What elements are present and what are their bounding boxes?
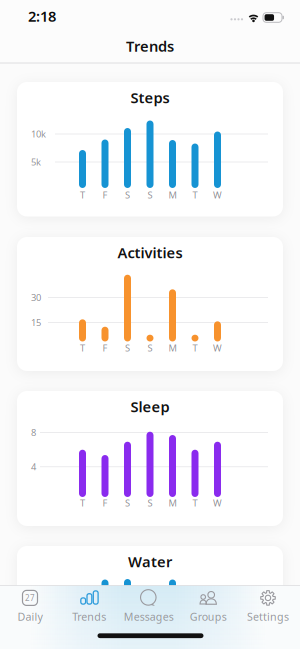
staticText: 2:18 [28,6,56,26]
staticText: M [168,189,176,201]
staticText: T [192,497,197,509]
staticText: Trends [72,609,106,624]
staticText: W [213,342,222,354]
staticText: W [213,189,222,201]
staticText: T [192,342,197,354]
button[interactable]: 27 [1,585,59,627]
staticText: 27 [25,593,35,603]
staticText: F [102,497,107,509]
staticText: S [147,342,152,354]
staticText: Messages [124,609,174,624]
staticText: 30 [31,291,41,304]
staticText: Settings [247,609,289,624]
staticText: 10k [31,128,46,140]
staticText: 15 [31,316,41,329]
staticText: F [102,342,107,354]
staticText: T [192,189,197,201]
staticText: S [125,342,130,354]
staticText: 8 [31,426,36,439]
staticText: M [168,497,176,509]
staticText: Groups [190,609,227,624]
button[interactable]: Groups [179,585,237,627]
button[interactable]: Trends [60,585,118,627]
button[interactable]: Messages [120,585,178,627]
staticText: Activities [117,243,182,262]
staticText: F [102,189,107,201]
staticText: Steps [130,88,169,107]
staticText: Trends [126,36,174,56]
staticText: S [125,497,130,509]
staticText: T [80,497,85,509]
staticText: W [213,497,222,509]
staticText: S [125,189,130,201]
staticText: 5k [31,156,41,168]
staticText: Water [128,552,172,571]
staticText: T [80,189,85,201]
button[interactable]: Settings [239,585,297,627]
staticText: Daily [17,609,42,624]
staticText: M [168,342,176,354]
staticText: S [147,497,152,509]
staticText: 4 [31,460,36,473]
staticText: Sleep [130,397,169,416]
staticText: T [80,342,85,354]
staticText: S [147,189,152,201]
